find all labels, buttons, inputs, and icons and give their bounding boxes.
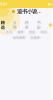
staticText: 书架	[37, 20, 41, 30]
staticText: 玄幻	[6, 30, 12, 34]
button[interactable]: 科幻	[40, 30, 48, 34]
button[interactable]: Search	[49, 23, 52, 27]
button[interactable]: 书架	[37, 20, 41, 30]
staticText: 女生频道	[13, 36, 25, 39]
button[interactable]: 玄幻	[5, 30, 13, 34]
staticText: 榜单	[25, 20, 29, 30]
staticText: 9:41	[0, 1, 7, 7]
button[interactable]: 分类	[13, 20, 17, 30]
button[interactable]: 都市	[16, 30, 25, 34]
button[interactable]: 精选	[1, 20, 5, 30]
staticText: 出版物	[31, 36, 40, 39]
staticText: 历史	[29, 30, 35, 34]
button[interactable]: 榜单	[25, 20, 29, 30]
staticText: 分类	[13, 20, 17, 30]
staticText: 科幻	[41, 30, 47, 34]
button[interactable]: 女生频道	[12, 35, 26, 40]
button[interactable]: 出版物	[29, 35, 41, 40]
staticText: ▮▮ ▰	[48, 2, 53, 5]
staticText: ⌄	[37, 9, 41, 14]
button[interactable]: 历史	[28, 30, 37, 34]
staticText: 都市	[18, 30, 24, 34]
staticText: 精选	[1, 20, 5, 30]
staticText: 追书小说	[15, 8, 37, 15]
